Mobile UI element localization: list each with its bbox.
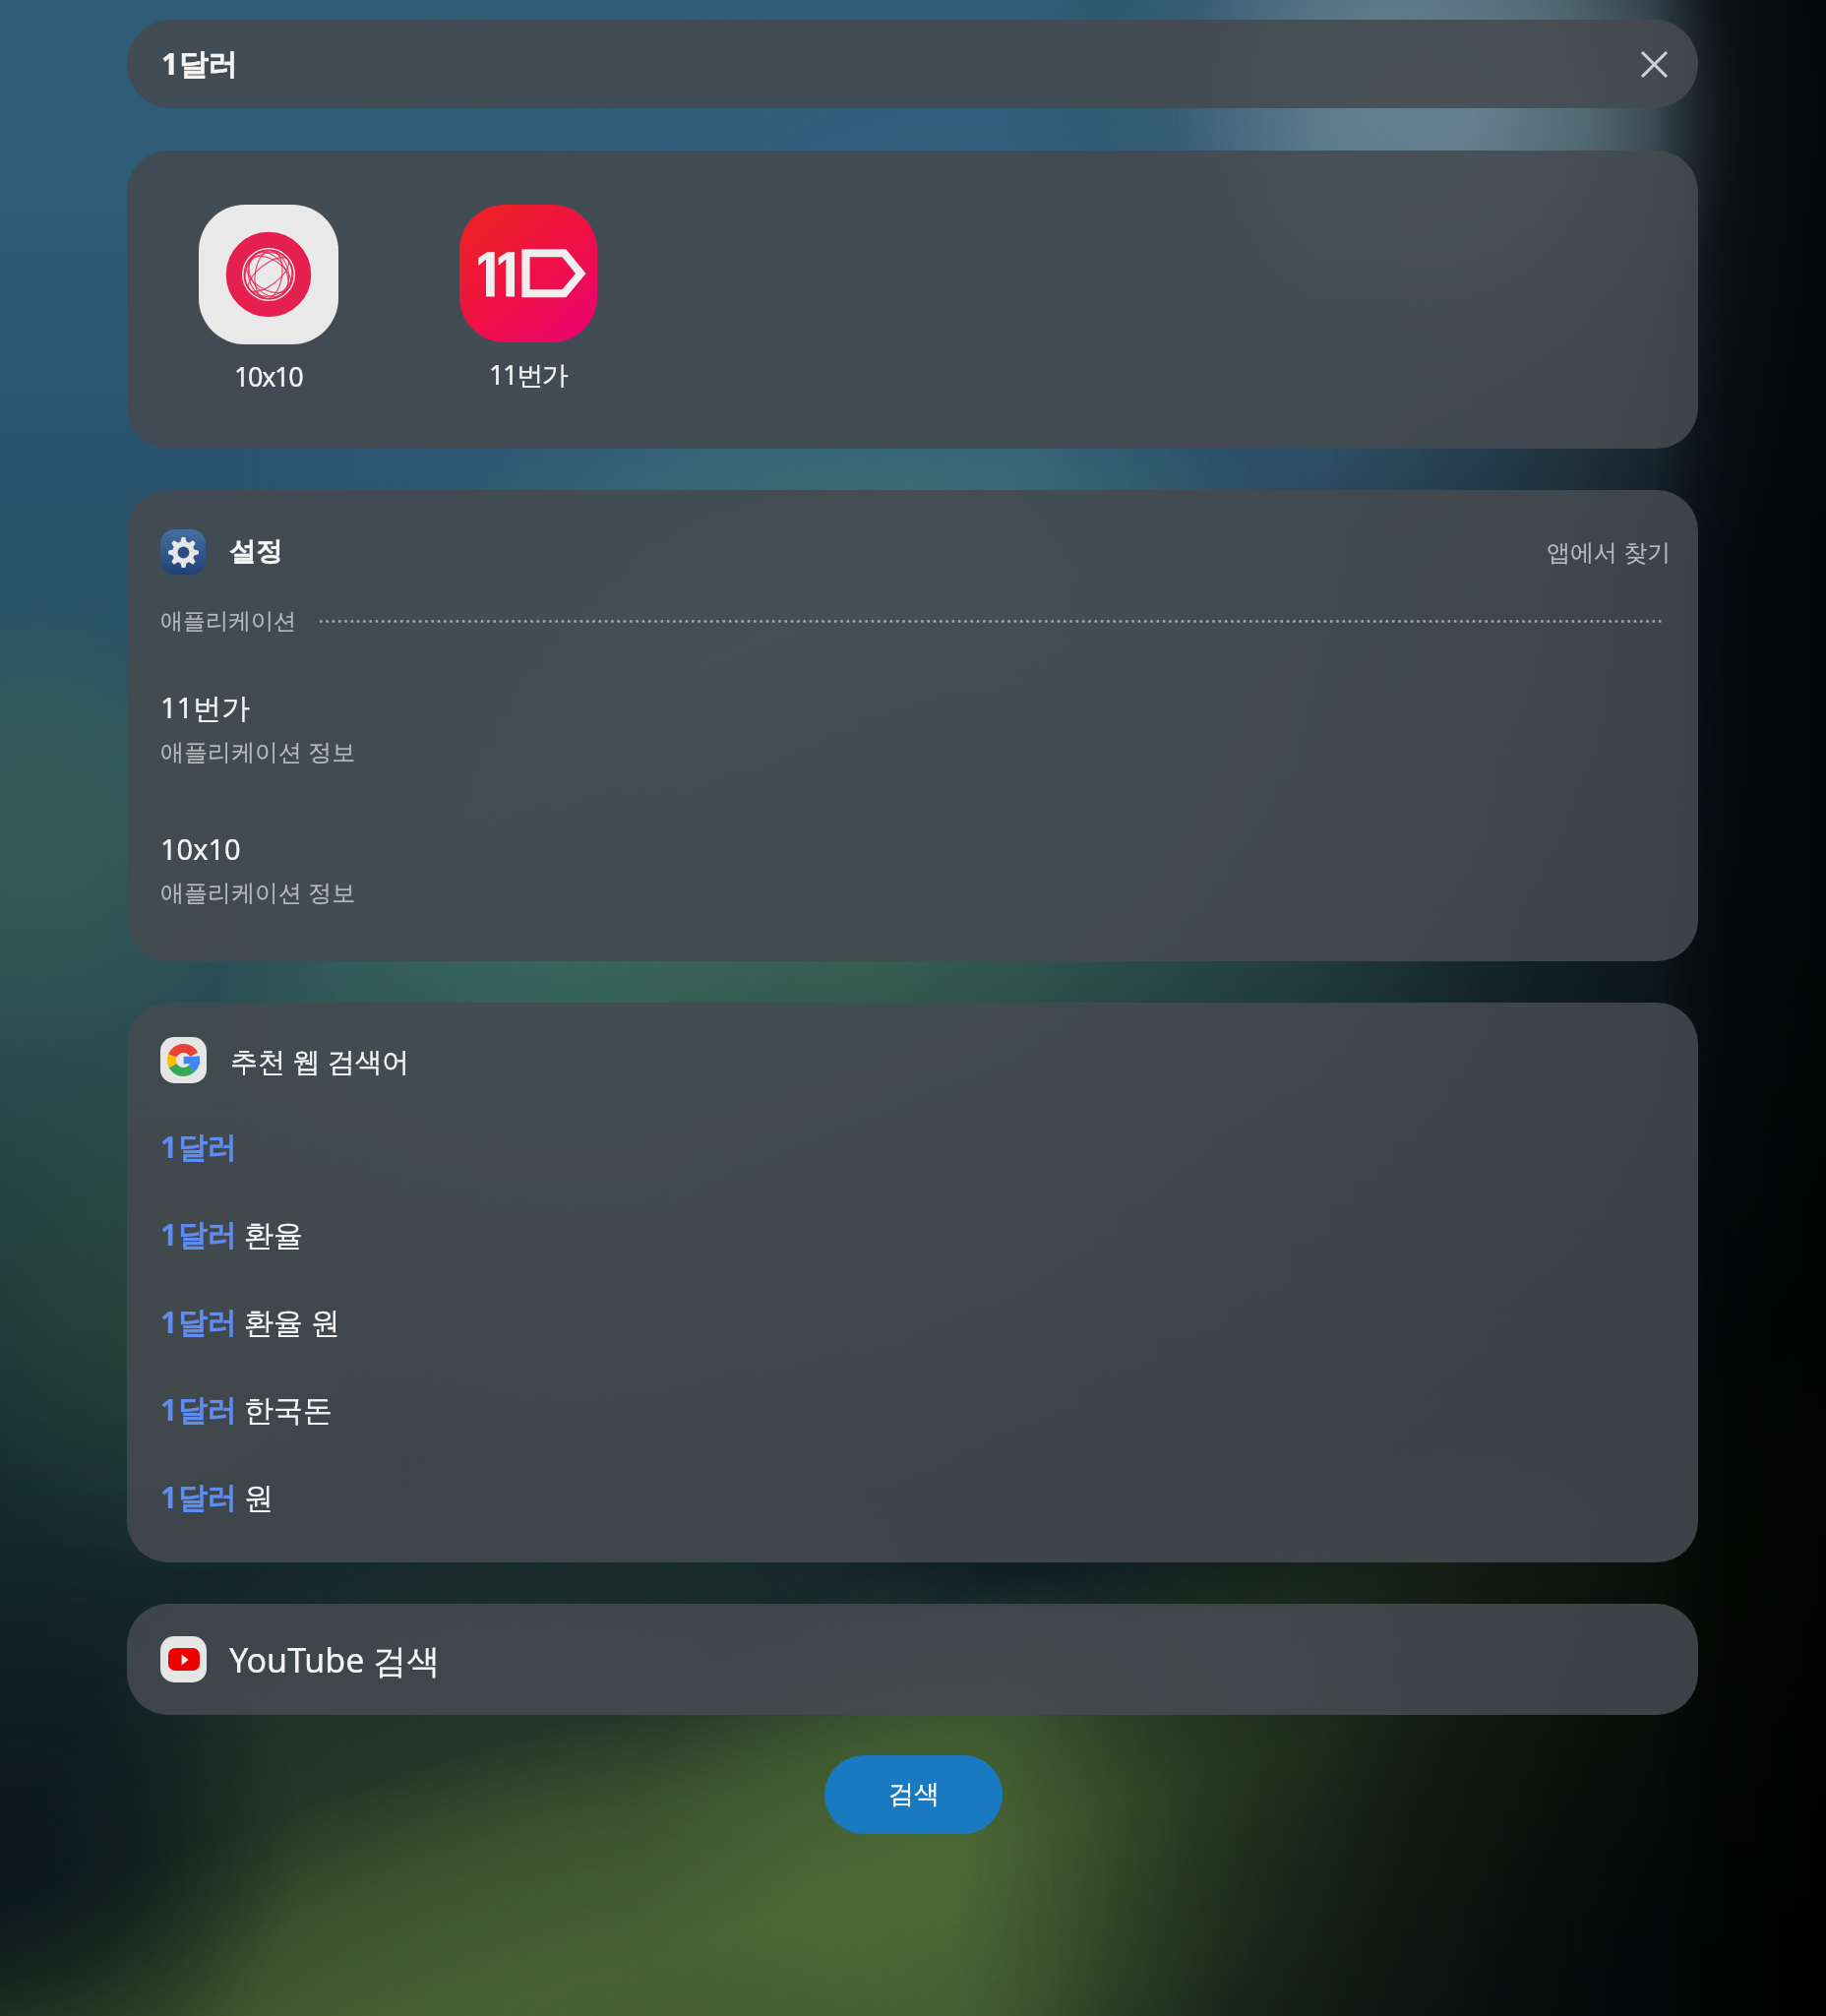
staticText: 애플리케이션 정보 <box>160 735 356 767</box>
staticText: 1달러 <box>160 1127 237 1167</box>
button[interactable]: YouTube 검색 <box>127 1604 1698 1715</box>
staticText: 검색 <box>888 1778 940 1810</box>
staticText: 1달러 환율 원 <box>160 1302 340 1342</box>
staticText: YouTube 검색 <box>229 1637 441 1682</box>
button[interactable]: 10x10 <box>127 829 1698 920</box>
staticText: 1달러 한국돈 <box>160 1389 333 1430</box>
button[interactable]: 11번가 <box>458 205 598 393</box>
button[interactable]: 1달러 <box>127 1103 1698 1191</box>
button[interactable]: 1달러 <box>127 20 1698 108</box>
button[interactable]: 11번가 <box>127 688 1698 779</box>
staticText: 11번가 <box>160 688 251 727</box>
staticText: 1달러 환율 <box>160 1214 303 1254</box>
button[interactable]: 1달러 환율 원 <box>127 1278 1698 1366</box>
staticText: 앱에서 찾기 <box>1547 535 1672 568</box>
button[interactable]: 1달러 한국돈 <box>127 1366 1698 1453</box>
button[interactable]: 앱에서 찾기 <box>1539 525 1679 578</box>
staticText: 애플리케이션 <box>160 607 296 636</box>
button[interactable]: 10x10 <box>199 205 338 395</box>
staticText: 11번가 <box>489 356 568 393</box>
staticText: 설정 <box>229 535 282 569</box>
staticText: 1달러 원 <box>160 1477 274 1517</box>
staticText: 추천 웹 검색어 <box>230 1042 410 1079</box>
button[interactable]: 1달러 환율 <box>127 1191 1698 1278</box>
button[interactable]: 검색 <box>824 1755 1003 1834</box>
staticText: 1달러 <box>161 43 238 84</box>
staticText: 10x10 <box>234 358 303 395</box>
button[interactable]: 1달러 원 <box>127 1453 1698 1541</box>
staticText: 10x10 <box>160 829 241 868</box>
staticText: 애플리케이션 정보 <box>160 876 356 908</box>
button[interactable]: Clear search <box>1622 32 1685 95</box>
